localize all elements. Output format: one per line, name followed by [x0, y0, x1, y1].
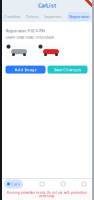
button[interactable]: Inspection [44, 14, 61, 19]
button[interactable]: Save Changes [47, 66, 87, 74]
button[interactable]: Condition [4, 14, 20, 19]
button[interactable]: Calendar [61, 182, 65, 186]
staticText: Running a simulator needs. Do not use wi… [7, 191, 87, 194]
button[interactable]: Cars [4, 179, 23, 189]
staticText: Exam Date Date: 07/21/2024 [5, 34, 53, 40]
staticText: CarList [38, 2, 56, 9]
staticText: Cars [11, 181, 20, 187]
staticText: credentials. [39, 194, 55, 198]
staticText: Registration: P-02 X-700 [5, 28, 44, 33]
button[interactable]: Documents [40, 182, 44, 186]
staticText: Add Image [14, 67, 36, 72]
staticText: Condition [4, 14, 20, 19]
staticText: Registration [69, 14, 89, 19]
staticText: Inspection [44, 14, 61, 19]
button[interactable]: Registration [67, 12, 91, 21]
button[interactable]: Defects [26, 14, 39, 19]
button[interactable]: Add Image [5, 66, 45, 74]
staticText: Save Changes [54, 67, 81, 72]
button[interactable]: Profile [82, 182, 86, 186]
staticText: Defects [26, 14, 39, 19]
